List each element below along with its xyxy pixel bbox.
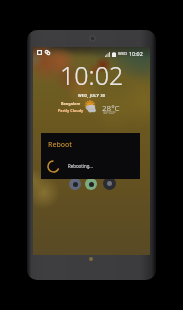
staticText: Reboot [48, 140, 73, 150]
staticText: Rebooting... [68, 163, 93, 169]
staticText: 10:02 [129, 50, 143, 57]
staticText: 28°C [102, 102, 120, 113]
staticText: WED, JULY 30 [78, 93, 106, 98]
staticText: Partly Cloudy [58, 108, 84, 113]
button[interactable]: Camera [103, 177, 116, 190]
staticText: 10:02 [60, 58, 124, 92]
staticText: Bangalore [61, 101, 81, 106]
staticText: WED [118, 51, 128, 57]
button[interactable]: Reboot [41, 133, 140, 179]
button[interactable]: Phone [69, 178, 81, 190]
button[interactable]: Unlock [85, 178, 97, 190]
staticText: 30°/23° [103, 110, 116, 115]
